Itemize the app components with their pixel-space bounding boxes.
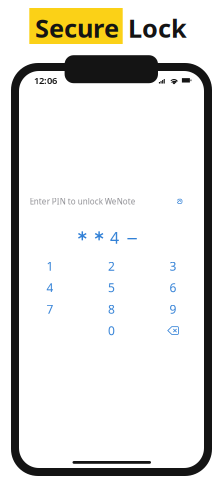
staticText: Lock bbox=[128, 11, 187, 45]
staticText: 2 bbox=[108, 258, 115, 274]
staticText: Secure bbox=[35, 11, 119, 45]
staticText: 9 bbox=[170, 301, 177, 317]
button[interactable]: 6 bbox=[142, 277, 204, 298]
staticText: 1 bbox=[46, 258, 53, 274]
staticText: 3 bbox=[170, 258, 177, 274]
button[interactable]: 9 bbox=[142, 298, 204, 320]
button[interactable]: 8 bbox=[81, 298, 142, 320]
button[interactable]: Delete bbox=[142, 320, 204, 341]
button[interactable]: 2 bbox=[81, 255, 142, 277]
staticText: 4 bbox=[46, 280, 53, 295]
button[interactable]: 1 bbox=[19, 255, 81, 277]
staticText: Enter PIN to unlock WeNote bbox=[30, 196, 136, 207]
button[interactable]: 3 bbox=[142, 255, 204, 277]
staticText: 7 bbox=[46, 301, 53, 317]
button[interactable]: 4 bbox=[19, 277, 81, 298]
button[interactable]: 5 bbox=[81, 277, 142, 298]
staticText: 4 bbox=[110, 227, 119, 248]
staticText: 0 bbox=[108, 323, 115, 338]
staticText: 12:06 bbox=[34, 74, 57, 87]
staticText: 5 bbox=[108, 280, 115, 295]
staticText: 8 bbox=[108, 301, 115, 317]
button[interactable]: 0 bbox=[81, 320, 142, 341]
staticText: 6 bbox=[170, 280, 177, 295]
button[interactable]: 7 bbox=[19, 298, 81, 320]
